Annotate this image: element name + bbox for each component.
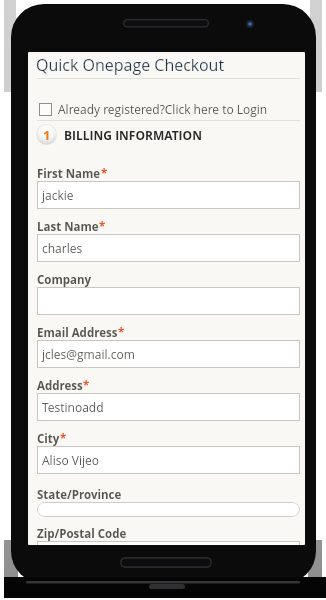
staticText: Company <box>37 272 92 288</box>
button[interactable] <box>37 541 300 545</box>
staticText: Address <box>37 378 83 394</box>
staticText: Already registered?Click here to Login <box>58 101 268 117</box>
button[interactable]: Aliso Vijeo <box>37 446 300 474</box>
button[interactable]: jcles@gmail.com <box>37 340 300 368</box>
button[interactable] <box>37 287 300 315</box>
staticText: BILLING INFORMATION <box>64 127 202 143</box>
staticText: First Name <box>37 166 101 182</box>
staticText: * <box>101 166 108 182</box>
button[interactable]: charles <box>37 234 300 262</box>
staticText: charles <box>42 240 83 256</box>
staticText: jcles@gmail.com <box>42 346 135 362</box>
staticText: Testinoadd <box>42 399 104 415</box>
staticText: * <box>99 219 106 235</box>
staticText: Aliso Vijeo <box>42 452 99 468</box>
staticText: Email Address <box>37 325 118 341</box>
staticText: jackie <box>42 187 74 203</box>
button[interactable]: Already registered?Click here to Login <box>39 101 268 117</box>
staticText: * <box>60 431 67 447</box>
staticText: Last Name <box>37 219 99 235</box>
staticText: Zip/Postal Code <box>37 526 127 542</box>
staticText: State/Province <box>37 487 122 503</box>
staticText: * <box>118 325 125 341</box>
button[interactable]: Testinoadd <box>37 393 300 421</box>
staticText: * <box>83 378 90 394</box>
button[interactable]: jackie <box>37 181 300 209</box>
button[interactable] <box>37 502 300 517</box>
staticText: City <box>37 431 60 447</box>
staticText: 1 <box>43 126 51 144</box>
staticText: Quick Onepage Checkout <box>36 54 225 76</box>
